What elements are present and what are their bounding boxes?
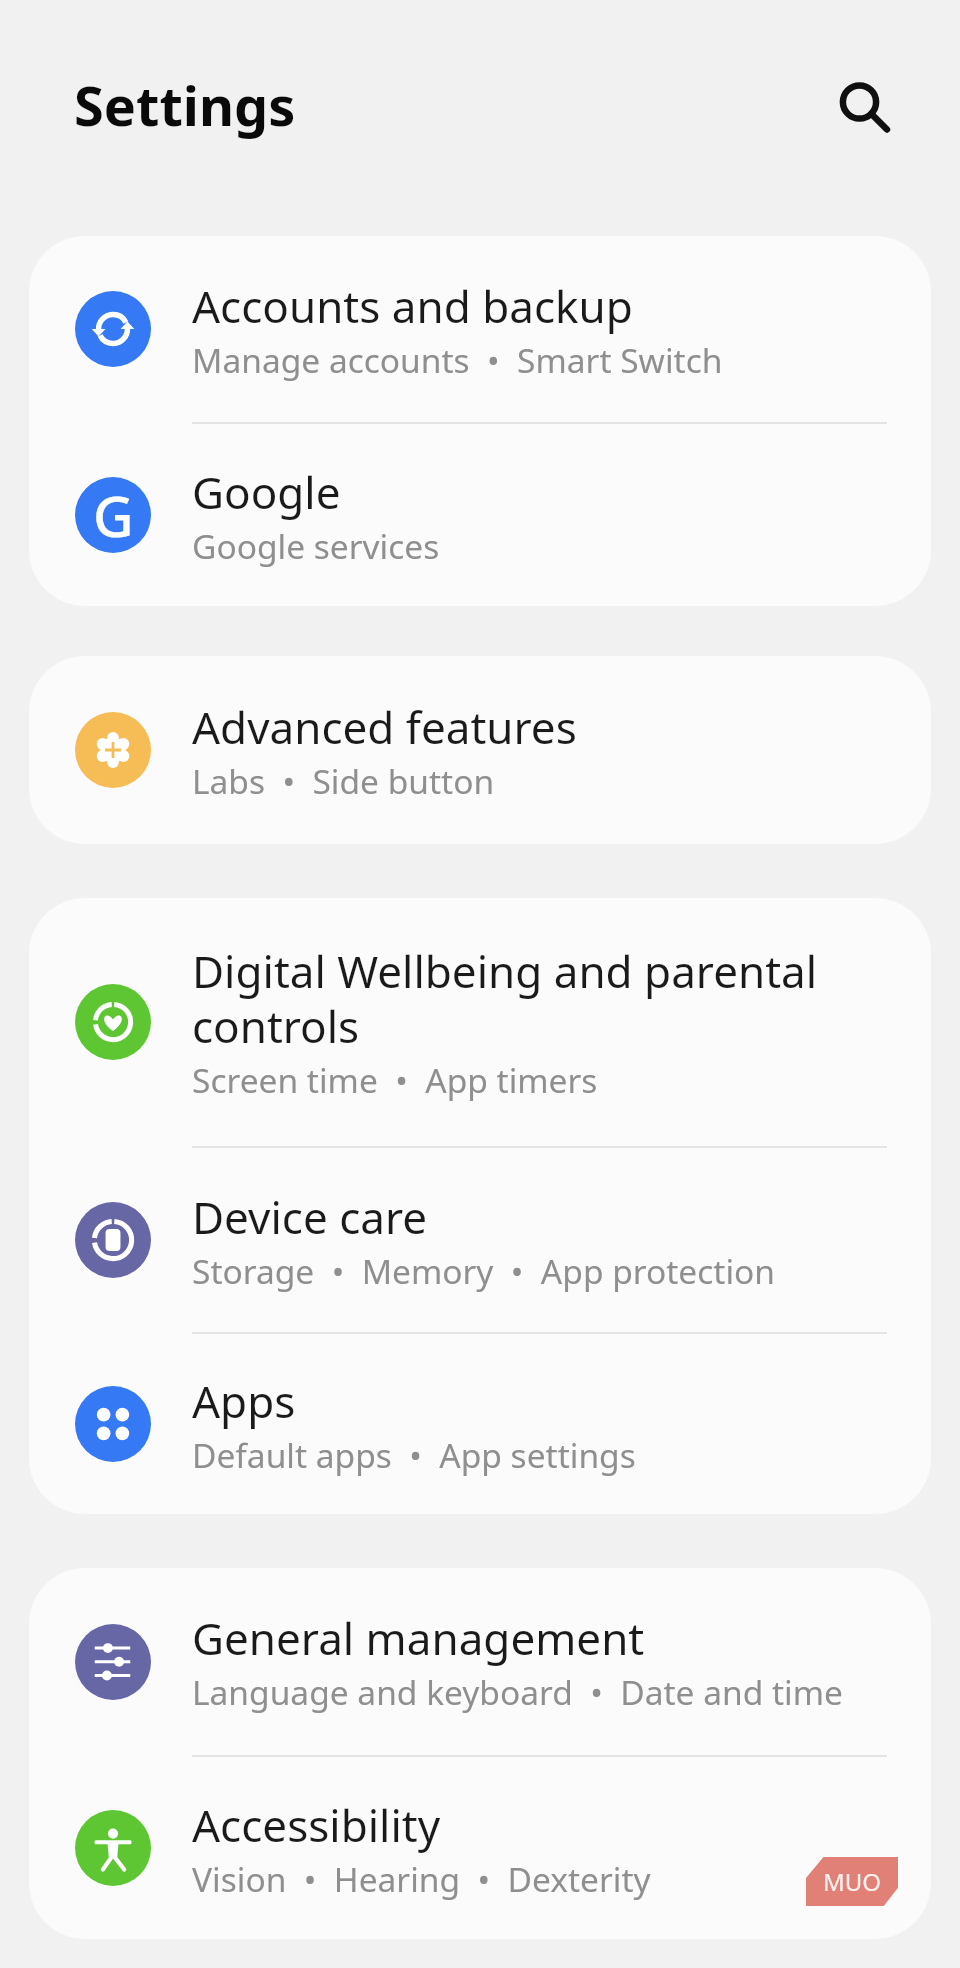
staticText: Default apps • App settings xyxy=(192,1432,636,1478)
staticText: Google xyxy=(192,462,341,522)
staticText: Device care xyxy=(192,1187,428,1247)
staticText: Language and keyboard • Date and time xyxy=(192,1669,843,1715)
staticText: Digital Wellbeing and parental controls xyxy=(192,941,891,1056)
staticText: Manage accounts • Smart Switch xyxy=(192,337,723,383)
button[interactable]: Digital Wellbeing and parental controls xyxy=(29,898,931,1146)
staticText: General management xyxy=(192,1608,645,1668)
button[interactable]: Accounts and backup xyxy=(29,236,931,422)
staticText: Screen time • App timers xyxy=(192,1057,598,1103)
button[interactable]: Apps xyxy=(29,1334,931,1514)
staticText: Vision • Hearing • Dexterity xyxy=(192,1856,651,1902)
staticText: Accounts and backup xyxy=(192,276,633,336)
button[interactable]: Advanced features xyxy=(29,656,931,844)
staticText: Google services xyxy=(192,523,440,569)
staticText: Storage • Memory • App protection xyxy=(192,1248,775,1294)
button[interactable]: General management xyxy=(29,1568,931,1755)
staticText: MUO xyxy=(823,1865,882,1898)
button[interactable]: Device care xyxy=(29,1148,931,1332)
staticText: Accessibility xyxy=(192,1795,441,1855)
staticText: Advanced features xyxy=(192,697,577,757)
button[interactable]: Accessibility xyxy=(29,1757,931,1939)
button[interactable]: G xyxy=(29,424,931,606)
button[interactable]: Search xyxy=(824,66,900,142)
staticText: Labs • Side button xyxy=(192,758,495,804)
staticText: G xyxy=(93,477,134,551)
staticText: Settings xyxy=(74,68,296,142)
staticText: Apps xyxy=(192,1371,296,1431)
